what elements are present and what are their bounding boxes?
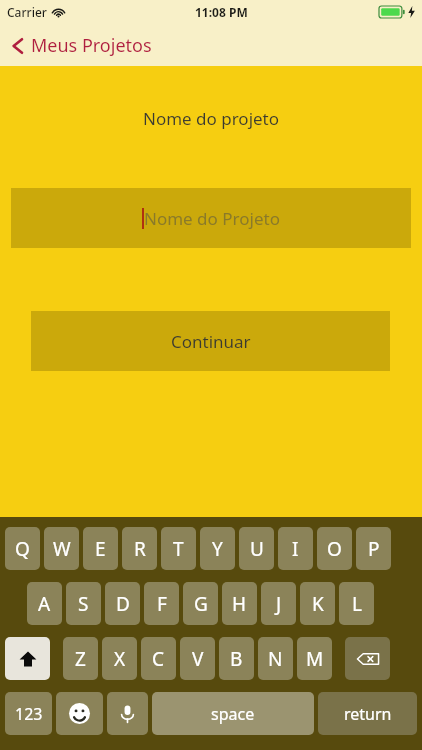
button[interactable]: Backspace xyxy=(345,637,390,680)
staticText: space xyxy=(211,703,255,725)
button[interactable]: E xyxy=(83,527,118,570)
button[interactable]: Nome do Projeto xyxy=(11,188,411,248)
staticText: Continuar xyxy=(171,330,251,353)
staticText: Q xyxy=(15,536,30,562)
button[interactable]: P xyxy=(356,527,391,570)
button[interactable]: Q xyxy=(5,527,40,570)
button[interactable]: K xyxy=(300,582,335,625)
button[interactable]: O xyxy=(317,527,352,570)
button[interactable]: U xyxy=(239,527,274,570)
staticText: W xyxy=(53,536,71,562)
button[interactable]: W xyxy=(44,527,79,570)
button[interactable]: I xyxy=(278,527,313,570)
staticText: T xyxy=(173,536,184,562)
staticText: R xyxy=(134,536,146,562)
button[interactable]: Continuar xyxy=(31,311,390,371)
staticText: E xyxy=(95,536,106,562)
button[interactable]: L xyxy=(339,582,374,625)
button[interactable]: V xyxy=(180,637,215,680)
staticText: C xyxy=(152,646,165,672)
staticText: M xyxy=(306,646,324,672)
staticText: H xyxy=(232,591,247,617)
button[interactable]: 123 xyxy=(5,692,52,735)
button[interactable]: Shift xyxy=(5,637,50,680)
other: Back xyxy=(8,36,28,56)
button[interactable]: Back xyxy=(8,33,152,58)
staticText: J xyxy=(276,591,282,617)
button[interactable]: C xyxy=(141,637,176,680)
button[interactable]: N xyxy=(258,637,293,680)
staticText: O xyxy=(327,536,342,562)
button[interactable]: X xyxy=(102,637,137,680)
button[interactable]: A xyxy=(27,582,62,625)
staticText: Nome do Projeto xyxy=(144,207,280,230)
staticText: V xyxy=(192,646,204,672)
button[interactable]: G xyxy=(183,582,218,625)
staticText: P xyxy=(368,536,380,562)
button[interactable]: H xyxy=(222,582,257,625)
staticText: I xyxy=(292,536,299,562)
button[interactable]: Emoji xyxy=(56,692,103,735)
button[interactable]: R xyxy=(122,527,157,570)
staticText: G xyxy=(194,591,208,617)
staticText: X xyxy=(114,646,126,672)
button[interactable]: Z xyxy=(63,637,98,680)
staticText: Nome do projeto xyxy=(0,107,422,130)
staticText: U xyxy=(250,536,264,562)
staticText: K xyxy=(312,591,324,617)
button[interactable]: D xyxy=(105,582,140,625)
staticText: S xyxy=(78,591,89,617)
staticText: N xyxy=(268,646,283,672)
button[interactable]: J xyxy=(261,582,296,625)
button[interactable]: M xyxy=(297,637,332,680)
staticText: return xyxy=(344,703,392,725)
button[interactable]: S xyxy=(66,582,101,625)
staticText: D xyxy=(116,591,130,617)
button[interactable]: T xyxy=(161,527,196,570)
staticText: B xyxy=(230,646,243,672)
button[interactable]: return xyxy=(318,692,417,735)
staticText: L xyxy=(352,591,362,617)
staticText: A xyxy=(38,591,51,617)
staticText: Z xyxy=(75,646,86,672)
button[interactable]: Dictate xyxy=(107,692,148,735)
button[interactable]: Y xyxy=(200,527,235,570)
button[interactable]: space xyxy=(152,692,314,735)
button[interactable]: B xyxy=(219,637,254,680)
button[interactable]: F xyxy=(144,582,179,625)
staticText: 11:08 PM xyxy=(195,4,248,20)
staticText: F xyxy=(157,591,167,617)
staticText: 123 xyxy=(15,703,43,725)
staticText: Carrier xyxy=(7,4,47,20)
staticText: Y xyxy=(212,536,223,562)
staticText: Meus Projetos xyxy=(31,33,152,58)
